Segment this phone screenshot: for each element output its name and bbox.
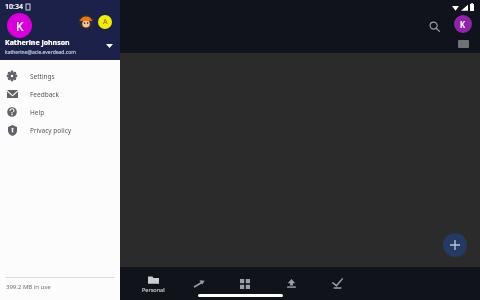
- staticText: Katherine Johnson: [5, 38, 70, 48]
- button[interactable]: Settings: [0, 67, 120, 85]
- staticText: 399.2 MB in use: [6, 283, 51, 291]
- button[interactable]: Current account: [7, 13, 32, 38]
- staticText: Privacy policy: [30, 126, 72, 135]
- staticText: Feedback: [30, 90, 59, 99]
- button[interactable]: Account: [454, 15, 472, 33]
- staticText: A: [103, 17, 108, 27]
- button[interactable]: Switch account: [79, 15, 93, 29]
- staticText: Personal: [142, 286, 165, 293]
- button[interactable]: Layout: [458, 40, 469, 48]
- staticText: K: [460, 19, 466, 30]
- button[interactable]: Apps: [222, 267, 268, 300]
- button[interactable]: Feedback: [0, 85, 120, 103]
- button[interactable]: Sign: [314, 267, 360, 300]
- staticText: K: [16, 18, 24, 34]
- staticText: Settings: [30, 72, 55, 81]
- staticText: Help: [30, 108, 45, 117]
- button[interactable]: Personal: [130, 267, 176, 300]
- button[interactable]: Create: [443, 233, 467, 257]
- button[interactable]: Upload: [268, 267, 314, 300]
- button[interactable]: Help: [0, 103, 120, 121]
- button[interactable]: Expand account list: [103, 40, 115, 52]
- staticText: 10:34: [5, 2, 23, 12]
- button[interactable]: Switch account: [98, 15, 112, 29]
- button[interactable]: Privacy policy: [0, 121, 120, 139]
- button[interactable]: Search: [424, 16, 444, 36]
- staticText: katherine@acie.everdead.com: [5, 49, 76, 56]
- button[interactable]: Share: [176, 267, 222, 300]
